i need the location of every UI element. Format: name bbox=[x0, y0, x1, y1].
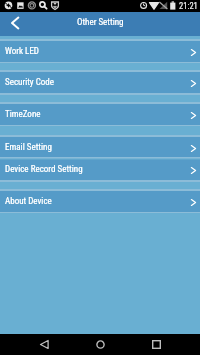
staticText: 21:21 bbox=[179, 1, 198, 11]
staticText: About Device bbox=[5, 196, 52, 207]
button[interactable]: Back bbox=[0, 12, 30, 36]
staticText: Email Setting bbox=[5, 142, 52, 153]
button[interactable]: Back bbox=[24, 334, 64, 355]
button[interactable]: Security Code bbox=[0, 72, 200, 93]
button[interactable]: TimeZone bbox=[0, 104, 200, 125]
staticText: Device Record Setting bbox=[5, 164, 83, 175]
staticText: Work LED bbox=[5, 46, 39, 57]
button[interactable]: Device Record Setting bbox=[0, 159, 200, 180]
button[interactable]: Email Setting bbox=[0, 137, 200, 158]
staticText: Security Code bbox=[5, 77, 54, 88]
staticText: TimeZone bbox=[5, 109, 41, 120]
button[interactable]: Home bbox=[80, 334, 120, 355]
button[interactable]: Recent apps bbox=[136, 334, 176, 355]
button[interactable]: Work LED bbox=[0, 41, 200, 62]
button[interactable]: About Device bbox=[0, 191, 200, 212]
staticText: Other Setting bbox=[77, 17, 124, 28]
